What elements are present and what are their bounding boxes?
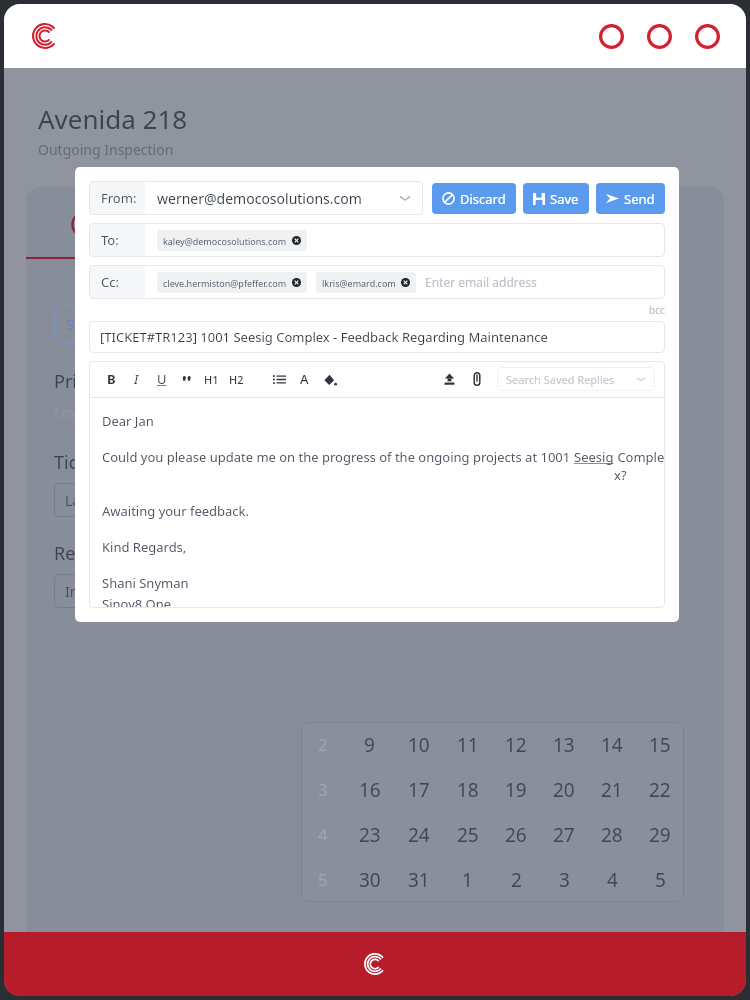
button[interactable]: 1 (443, 857, 492, 902)
staticText: B (107, 370, 116, 388)
staticText: 27 (553, 822, 575, 848)
button[interactable]: 19 (492, 767, 540, 812)
button[interactable]: I (124, 364, 149, 394)
staticText: U (157, 370, 167, 388)
button[interactable]: Home (28, 19, 62, 53)
button[interactable]: Discard (432, 183, 516, 214)
button[interactable]: Remove kaley@democosolutions.com (292, 236, 301, 245)
button[interactable]: 13 (540, 722, 588, 767)
staticText: Outgoing Inspection (38, 140, 174, 159)
button[interactable]: lkris@emard.com (316, 272, 416, 293)
staticText: 25 (457, 822, 479, 848)
button[interactable]: 27 (540, 812, 588, 857)
staticText: Seesig (574, 448, 614, 466)
staticText: kaley@democosolutions.com (163, 235, 287, 247)
staticText: Discard (460, 190, 506, 208)
button[interactable]: 4 (588, 857, 636, 902)
button[interactable]: U (149, 364, 174, 394)
button[interactable]: 24 (394, 812, 443, 857)
button[interactable]: Bulleted list (267, 364, 292, 394)
button[interactable]: cleve.hermiston@pfeffer.com (157, 272, 307, 293)
button[interactable]: 16 (345, 767, 394, 812)
staticText: Could you please update me on the progre… (102, 448, 574, 466)
button[interactable]: 21 (588, 767, 636, 812)
button[interactable]: A (292, 364, 317, 394)
button[interactable]: 18 (443, 767, 492, 812)
staticText: 5 (655, 867, 666, 893)
button[interactable]: Remove cleve.hermiston@pfeffer.com (292, 278, 301, 287)
staticText: To: (101, 231, 119, 249)
button[interactable]: [TICKET#TR123] 1001 Seesig Complex - Fee… (89, 321, 665, 353)
button[interactable]: Comments (143, 201, 260, 259)
staticText: Cc: (101, 273, 119, 291)
button[interactable]: Remove lkris@emard.com (401, 278, 410, 287)
button[interactable]: Schedule (54, 305, 174, 343)
button[interactable]: Landlord (54, 483, 184, 517)
button[interactable]: 9 (345, 722, 394, 767)
button[interactable]: 23 (345, 812, 394, 857)
button[interactable]: Messages (644, 21, 674, 51)
button[interactable]: Send (596, 183, 665, 214)
button[interactable]: Upload (437, 364, 462, 394)
button[interactable]: kaley@democosolutions.com (157, 230, 307, 251)
button[interactable]: 31 (394, 857, 443, 902)
button[interactable]: H2 (224, 364, 249, 394)
staticText: cleve.hermiston@pfeffer.com (163, 277, 287, 289)
staticText: Avenida 218 (38, 101, 188, 136)
button[interactable]: Quote (174, 364, 199, 394)
button[interactable]: Files (260, 201, 377, 259)
staticText: lkris@emard.com (322, 277, 396, 289)
staticText: 3 (318, 778, 328, 801)
button[interactable]: 2 (492, 857, 540, 902)
button[interactable]: 3 (540, 857, 588, 902)
staticText: Ticket (54, 450, 104, 475)
button[interactable]: bcc (649, 303, 665, 317)
button[interactable]: 14 (588, 722, 636, 767)
staticText: werner@democosolutions.com (157, 189, 397, 208)
staticText: Low (54, 402, 83, 422)
button[interactable]: 25 (443, 812, 492, 857)
button[interactable]: From: (89, 181, 423, 215)
button[interactable]: 28 (588, 812, 636, 857)
staticText: Awaiting your feedback. (102, 502, 249, 520)
button[interactable]: 10 (394, 722, 443, 767)
staticText: Complex? (614, 448, 665, 484)
button[interactable]: 30 (345, 857, 394, 902)
staticText: 26 (505, 822, 527, 848)
staticText: 18 (457, 777, 479, 803)
button[interactable]: 5 (636, 857, 684, 902)
staticText: 2 (511, 867, 522, 893)
button[interactable]: Account (692, 21, 722, 51)
button[interactable]: 26 (492, 812, 540, 857)
button[interactable]: Inspection (54, 574, 184, 608)
button[interactable]: H1 (199, 364, 224, 394)
staticText: 22 (649, 777, 671, 803)
button[interactable]: Notifications (596, 21, 626, 51)
staticText: 5 (318, 868, 328, 891)
button[interactable]: B (99, 364, 124, 394)
button[interactable]: 29 (636, 812, 684, 857)
button[interactable]: Details (26, 201, 143, 259)
button[interactable]: Search Saved Replies (497, 367, 655, 391)
button[interactable]: 15 (636, 722, 684, 767)
button[interactable]: 20 (540, 767, 588, 812)
staticText: 9 (364, 732, 375, 758)
staticText: 23 (359, 822, 381, 848)
staticText: Dear Jan (102, 412, 154, 430)
button[interactable]: Save (523, 183, 589, 214)
button[interactable]: 17 (394, 767, 443, 812)
staticText: A (300, 370, 309, 388)
button[interactable]: To: (89, 223, 665, 257)
staticText: Priority (54, 369, 116, 394)
staticText: 28 (601, 822, 623, 848)
button[interactable]: Attach file (464, 364, 489, 394)
button[interactable]: Cc: (89, 265, 665, 299)
staticText: H2 (229, 372, 244, 387)
button[interactable]: Fill colour (317, 364, 342, 394)
staticText: 17 (408, 777, 430, 803)
button[interactable]: 11 (443, 722, 492, 767)
staticText: I (134, 370, 139, 388)
button[interactable]: 12 (492, 722, 540, 767)
staticText: 20 (553, 777, 575, 803)
button[interactable]: 22 (636, 767, 684, 812)
